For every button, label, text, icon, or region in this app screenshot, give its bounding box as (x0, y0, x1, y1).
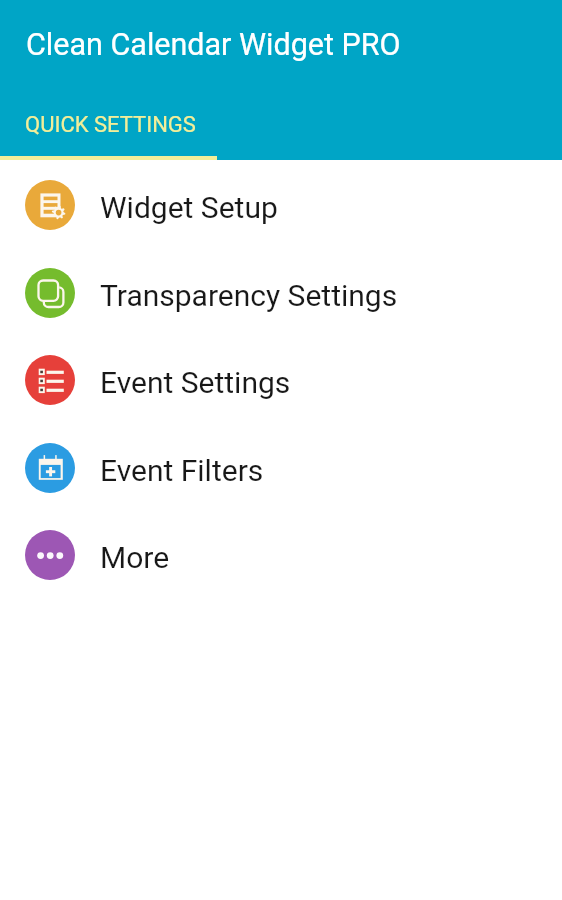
staticText: Clean Calendar Widget PRO (26, 27, 401, 63)
button[interactable]: Widget Setup (0, 161, 562, 249)
staticText: Widget Setup (100, 190, 278, 225)
other: Event Filters (25, 443, 75, 493)
other: Widget Setup (25, 180, 75, 230)
button[interactable]: Event Filters (0, 424, 562, 512)
button[interactable]: Transparency Settings (0, 249, 562, 337)
button[interactable]: More (0, 511, 562, 599)
staticText: QUICK SETTINGS (25, 112, 196, 138)
staticText: More (100, 540, 170, 575)
other: More (25, 530, 75, 580)
staticText: Transparency Settings (100, 278, 398, 313)
button[interactable]: QUICK SETTINGS (0, 100, 217, 160)
other: Event Settings (25, 355, 75, 405)
staticText: Event Settings (100, 365, 291, 400)
button[interactable]: Event Settings (0, 336, 562, 424)
other: Transparency Settings (25, 268, 75, 318)
staticText: Event Filters (100, 453, 264, 488)
